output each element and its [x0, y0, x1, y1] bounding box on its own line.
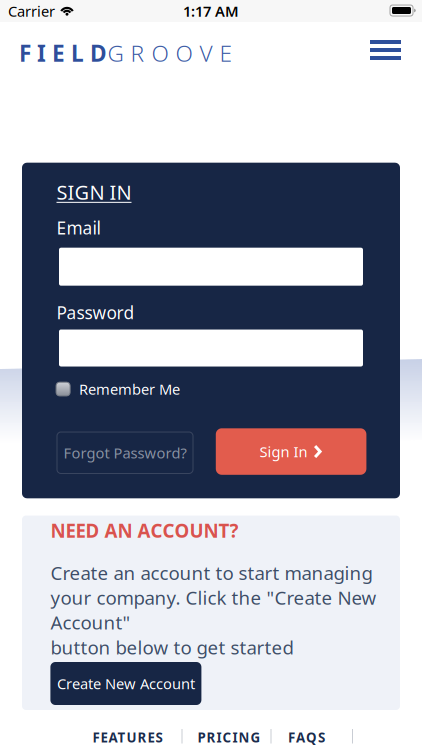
button[interactable]: Sign In	[216, 428, 366, 475]
button[interactable]: Email	[59, 248, 363, 286]
staticText: SIGN IN	[56, 179, 131, 205]
button[interactable]: Forgot Password?	[57, 432, 193, 473]
staticText: Password	[56, 301, 134, 324]
staticText: Carrier	[8, 1, 55, 21]
staticText: FEATURES	[92, 728, 162, 746]
button[interactable]: FieldGroove Home	[19, 38, 234, 68]
staticText: Sign In	[260, 442, 308, 461]
staticText: Remember Me	[79, 379, 180, 399]
staticText: Create an account to start managing your…	[51, 560, 377, 660]
button[interactable]: Create New Account	[50, 662, 201, 705]
staticText: PRICING	[197, 728, 260, 746]
button[interactable]: FAQS	[288, 728, 358, 748]
staticText: Forgot Password?	[63, 443, 186, 462]
staticText: NEED AN ACCOUNT?	[51, 518, 239, 543]
staticText: FAQS	[288, 728, 325, 746]
staticText: GROOVE	[107, 38, 232, 68]
button[interactable]: Remember Me	[56, 379, 180, 399]
staticText: Create New Account	[57, 674, 195, 693]
staticText: 1:17 AM	[183, 1, 239, 21]
button[interactable]: PRICING	[197, 728, 292, 748]
staticText: FIELD	[19, 38, 107, 68]
button[interactable]: FEATURES	[92, 728, 202, 748]
button[interactable]: Menu	[370, 40, 401, 60]
staticText: Email	[56, 216, 100, 239]
